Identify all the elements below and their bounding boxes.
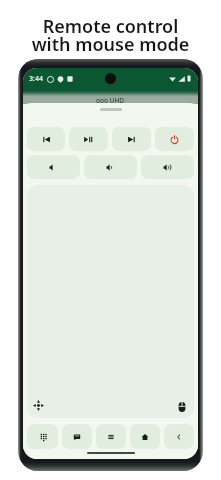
staticText: 3:44 — [29, 74, 43, 84]
staticText: Remote control with mouse mode — [0, 14, 221, 56]
button[interactable]: Mute — [84, 155, 137, 179]
button[interactable]: Keypad — [27, 424, 58, 449]
button[interactable]: Previous — [27, 127, 65, 151]
button[interactable]: Volume up — [141, 155, 194, 179]
button[interactable]: Move — [33, 400, 44, 411]
button[interactable]: Home — [130, 424, 160, 449]
button[interactable]: Menu — [96, 424, 126, 449]
button[interactable]: Power — [155, 127, 194, 151]
button[interactable]: Volume down — [27, 155, 80, 179]
staticText: ooo UHD — [96, 96, 125, 105]
button[interactable]: Touchpad — [27, 185, 194, 418]
button[interactable]: Next — [112, 127, 151, 151]
button[interactable]: Mouse mode — [177, 402, 187, 412]
button[interactable]: Messages — [62, 424, 92, 449]
button[interactable]: Back — [164, 424, 194, 449]
button[interactable]: Play pause — [69, 127, 108, 151]
